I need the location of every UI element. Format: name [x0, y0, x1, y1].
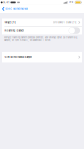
- staticText: Roaming danych: [4, 29, 23, 32]
- staticText: Sieć komórkowa: [5, 7, 27, 10]
- button[interactable]: Sieć komórkowa danych: [2, 52, 82, 62]
- staticText: Włącz LTE: [4, 21, 16, 24]
- button[interactable]: Włącz LTE: [2, 18, 82, 26]
- staticText: Sieć komórkowa danych: [4, 56, 31, 59]
- button[interactable]: Roaming danych: [2, 27, 82, 34]
- staticText: Głosowy i dane LTE: [53, 21, 77, 24]
- staticText: Wyłącz roaming danych podczas podróży, a…: [4, 36, 77, 41]
- button[interactable]: Sieć komórkowa: [0, 5, 30, 13]
- staticText: LTE: [69, 1, 74, 4]
- staticText: 9:41: [3, 1, 9, 4]
